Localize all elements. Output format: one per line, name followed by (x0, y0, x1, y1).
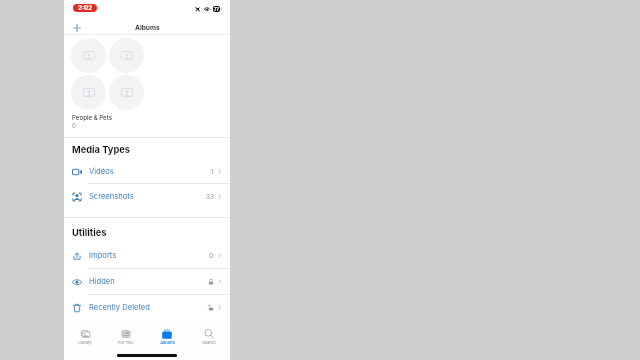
staticText: People & Pets (72, 114, 112, 121)
staticText: Screenshots (89, 192, 134, 201)
button[interactable]: Person album (109, 75, 144, 110)
button[interactable]: Person album (71, 75, 106, 110)
button[interactable]: Library (64, 324, 105, 348)
button[interactable]: Albums (146, 324, 188, 348)
button[interactable]: Screenshots (64, 184, 230, 209)
staticText: Albums (160, 340, 175, 345)
button[interactable]: For You (105, 324, 146, 348)
staticText: Utilities (72, 227, 107, 238)
staticText: Recently Deleted (89, 303, 150, 312)
staticText: Hidden (89, 277, 115, 286)
staticText: Albums (135, 24, 160, 32)
button[interactable]: Search (188, 324, 230, 348)
button[interactable]: Hidden (64, 269, 230, 294)
staticText: Search (202, 340, 216, 345)
button[interactable]: Recently Deleted (64, 295, 230, 320)
staticText: Imports (89, 251, 117, 260)
button[interactable]: Videos (64, 159, 230, 184)
staticText: 2:02 (78, 4, 93, 12)
button[interactable]: Add album (69, 20, 85, 36)
staticText: 1 (211, 168, 214, 176)
staticText: 33 (206, 193, 214, 201)
button[interactable]: Person album (109, 38, 144, 73)
staticText: Library (78, 340, 92, 345)
staticText: Media Types (72, 144, 131, 155)
staticText: Videos (89, 167, 114, 176)
button[interactable]: Person album (71, 38, 106, 73)
button[interactable]: Imports (64, 243, 230, 268)
staticText: 0 (209, 252, 214, 260)
staticText: 77 (214, 7, 219, 12)
staticText: 0 (72, 122, 76, 129)
staticText: For You (118, 340, 133, 345)
